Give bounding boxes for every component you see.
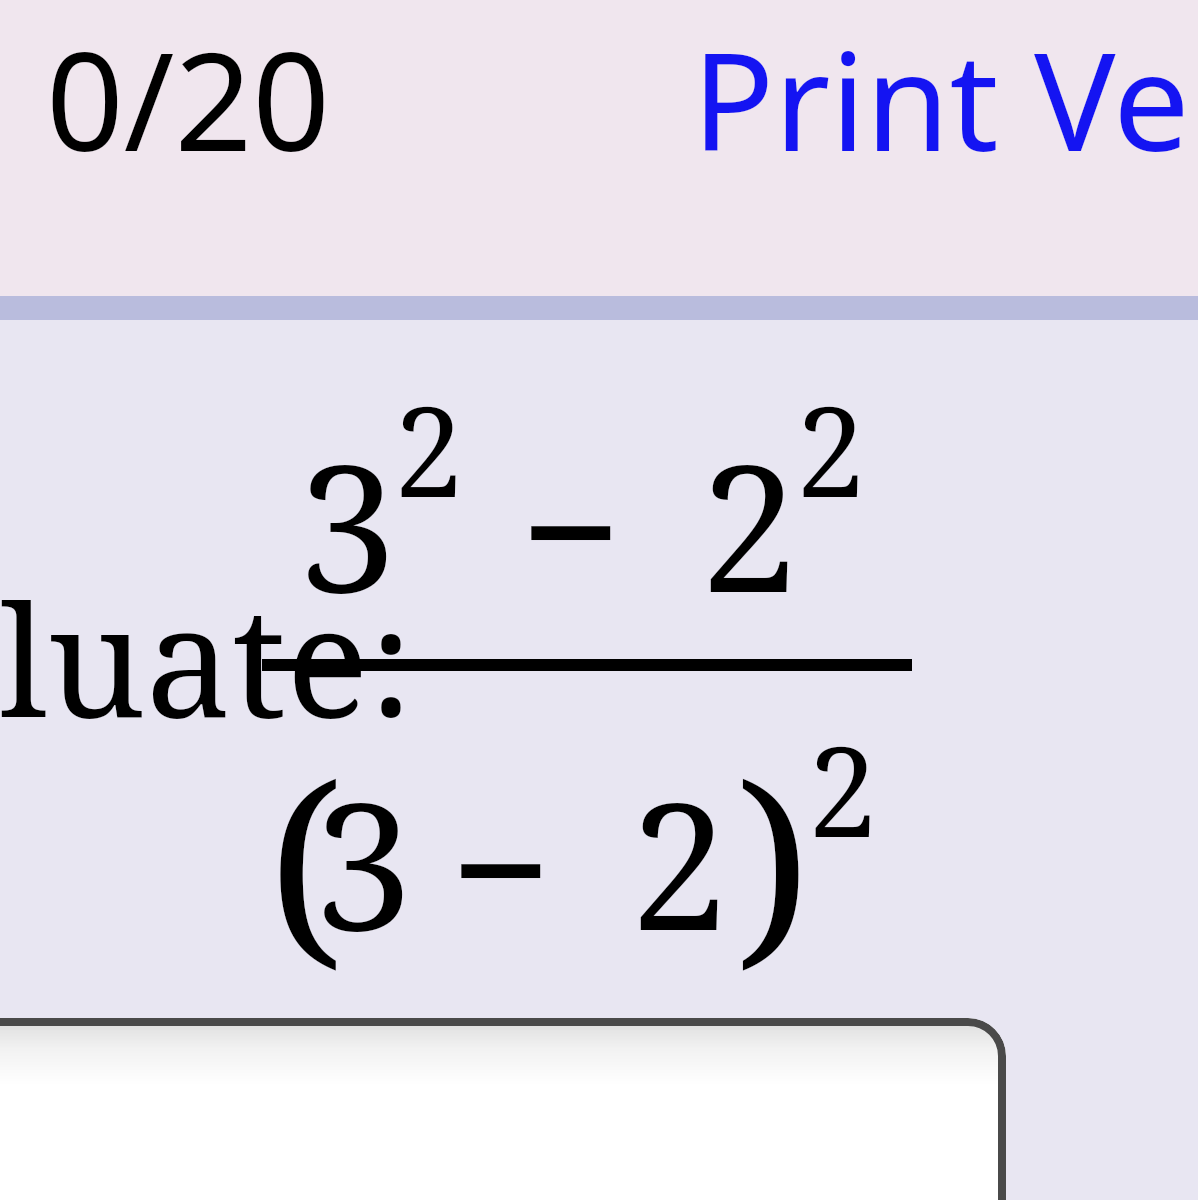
staticText: 2 [630, 742, 729, 982]
staticText: 2 [700, 404, 799, 644]
staticText: 3 [314, 742, 413, 982]
staticText: 2 [808, 704, 878, 873]
staticText: − [520, 408, 622, 648]
staticText: Print Version [692, 6, 1198, 162]
staticText: ( [268, 712, 343, 1006]
staticText: 2 [796, 364, 866, 533]
staticText: − [450, 746, 552, 986]
staticText: 3 [298, 404, 397, 644]
staticText: Evaluate: [0, 552, 413, 762]
button[interactable]: Print Version [692, 6, 1198, 162]
staticText: 2 [394, 364, 464, 533]
button[interactable]: Score 0 of 20 [46, 6, 384, 162]
button[interactable]: Answer input field [0, 1018, 1006, 1200]
staticText: ) [736, 712, 811, 1006]
staticText: 0/20 [46, 6, 330, 162]
